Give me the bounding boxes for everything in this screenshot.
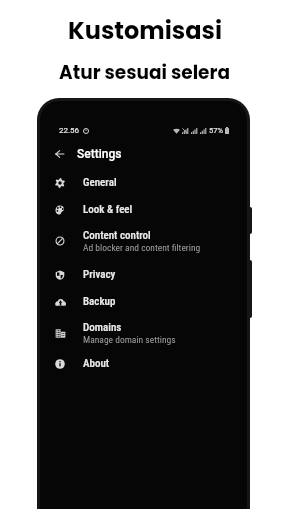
- staticText: Settings: [77, 147, 122, 161]
- button[interactable]: About: [40, 350, 247, 377]
- staticText: 57%: [209, 126, 223, 135]
- staticText: Atur sesuai selera: [59, 60, 230, 86]
- button[interactable]: Back: [50, 145, 68, 163]
- staticText: Kustomisasi: [68, 14, 222, 48]
- button[interactable]: Content control: [40, 223, 247, 259]
- button[interactable]: Look & feel: [40, 196, 247, 223]
- button[interactable]: Backup: [40, 288, 247, 315]
- staticText: Domains: [83, 321, 122, 334]
- button[interactable]: General: [40, 169, 247, 196]
- staticText: Manage domain settings: [83, 334, 176, 345]
- staticText: Content control: [83, 229, 151, 242]
- button[interactable]: Privacy: [40, 261, 247, 288]
- button[interactable]: Domains: [40, 315, 247, 351]
- staticText: General: [83, 176, 117, 189]
- staticText: Backup: [83, 295, 116, 308]
- staticText: Look & feel: [83, 203, 133, 216]
- staticText: 22.56: [59, 126, 80, 135]
- staticText: Ad blocker and content filtering: [83, 242, 201, 253]
- staticText: About: [83, 357, 110, 370]
- staticText: Privacy: [83, 268, 116, 281]
